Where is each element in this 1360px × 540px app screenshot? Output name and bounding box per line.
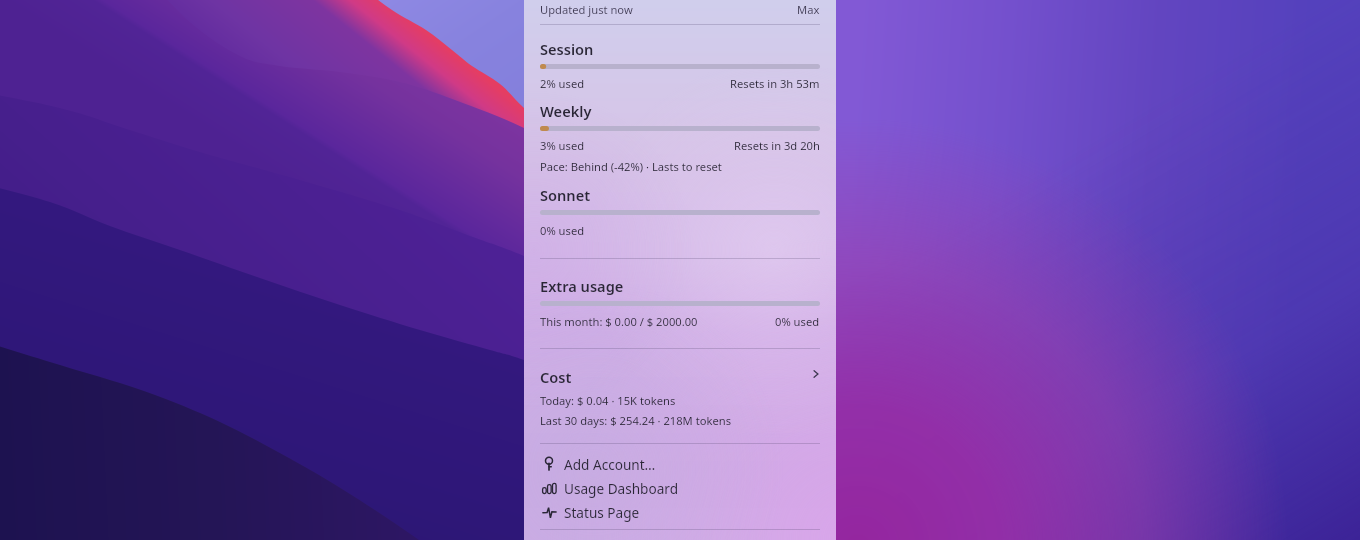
staticText: 0% used xyxy=(775,314,820,329)
button[interactable]: Cost xyxy=(524,358,836,434)
staticText: This month: $ 0.00 / $ 2000.00 xyxy=(540,314,698,329)
button[interactable]: Add Account… xyxy=(524,452,836,476)
staticText: Extra usage xyxy=(540,276,624,296)
staticText: Updated just now xyxy=(540,2,633,17)
staticText: Resets in 3h 53m xyxy=(730,76,820,91)
staticText: Status Page xyxy=(564,503,640,522)
staticText: Sonnet xyxy=(540,185,591,205)
staticText: Cost xyxy=(540,367,572,387)
staticText: Last 30 days: $ 254.24 · 218M tokens xyxy=(540,413,732,428)
staticText: Weekly xyxy=(540,101,592,121)
staticText: Session xyxy=(540,39,594,59)
staticText: Add Account… xyxy=(564,455,656,474)
staticText: 3% used xyxy=(540,138,585,153)
staticText: 0% used xyxy=(540,223,585,238)
staticText: Usage Dashboard xyxy=(564,479,679,498)
button[interactable]: Status Page xyxy=(524,500,836,524)
staticText: Today: $ 0.04 · 15K tokens xyxy=(540,393,676,408)
button[interactable]: Usage Dashboard xyxy=(524,476,836,500)
staticText: Max xyxy=(797,2,820,17)
staticText: Pace: Behind (-42%) · Lasts to reset xyxy=(540,159,722,174)
staticText: 2% used xyxy=(540,76,585,91)
staticText: Resets in 3d 20h xyxy=(734,138,820,153)
